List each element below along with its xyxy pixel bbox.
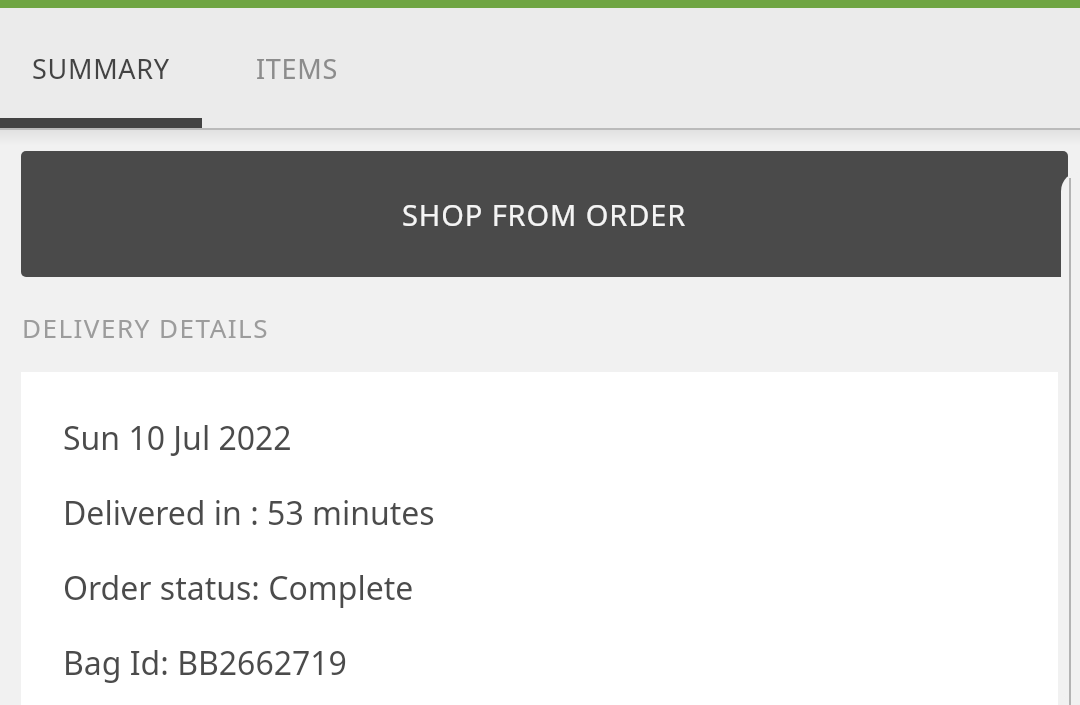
staticText: SHOP FROM ORDER <box>402 195 687 234</box>
staticText: ITEMS <box>256 50 338 87</box>
button[interactable]: SUMMARY <box>0 8 202 128</box>
button[interactable]: SHOP FROM ORDER <box>21 151 1068 277</box>
staticText: DELIVERY DETAILS <box>22 310 269 345</box>
button[interactable]: ITEMS <box>202 8 392 128</box>
staticText: SUMMARY <box>32 50 170 87</box>
staticText: Order status: Complete <box>63 566 414 610</box>
staticText: Bag Id: BB2662719 <box>63 641 347 685</box>
staticText: Delivered in : 53 minutes <box>63 491 435 535</box>
staticText: Sun 10 Jul 2022 <box>63 416 292 460</box>
